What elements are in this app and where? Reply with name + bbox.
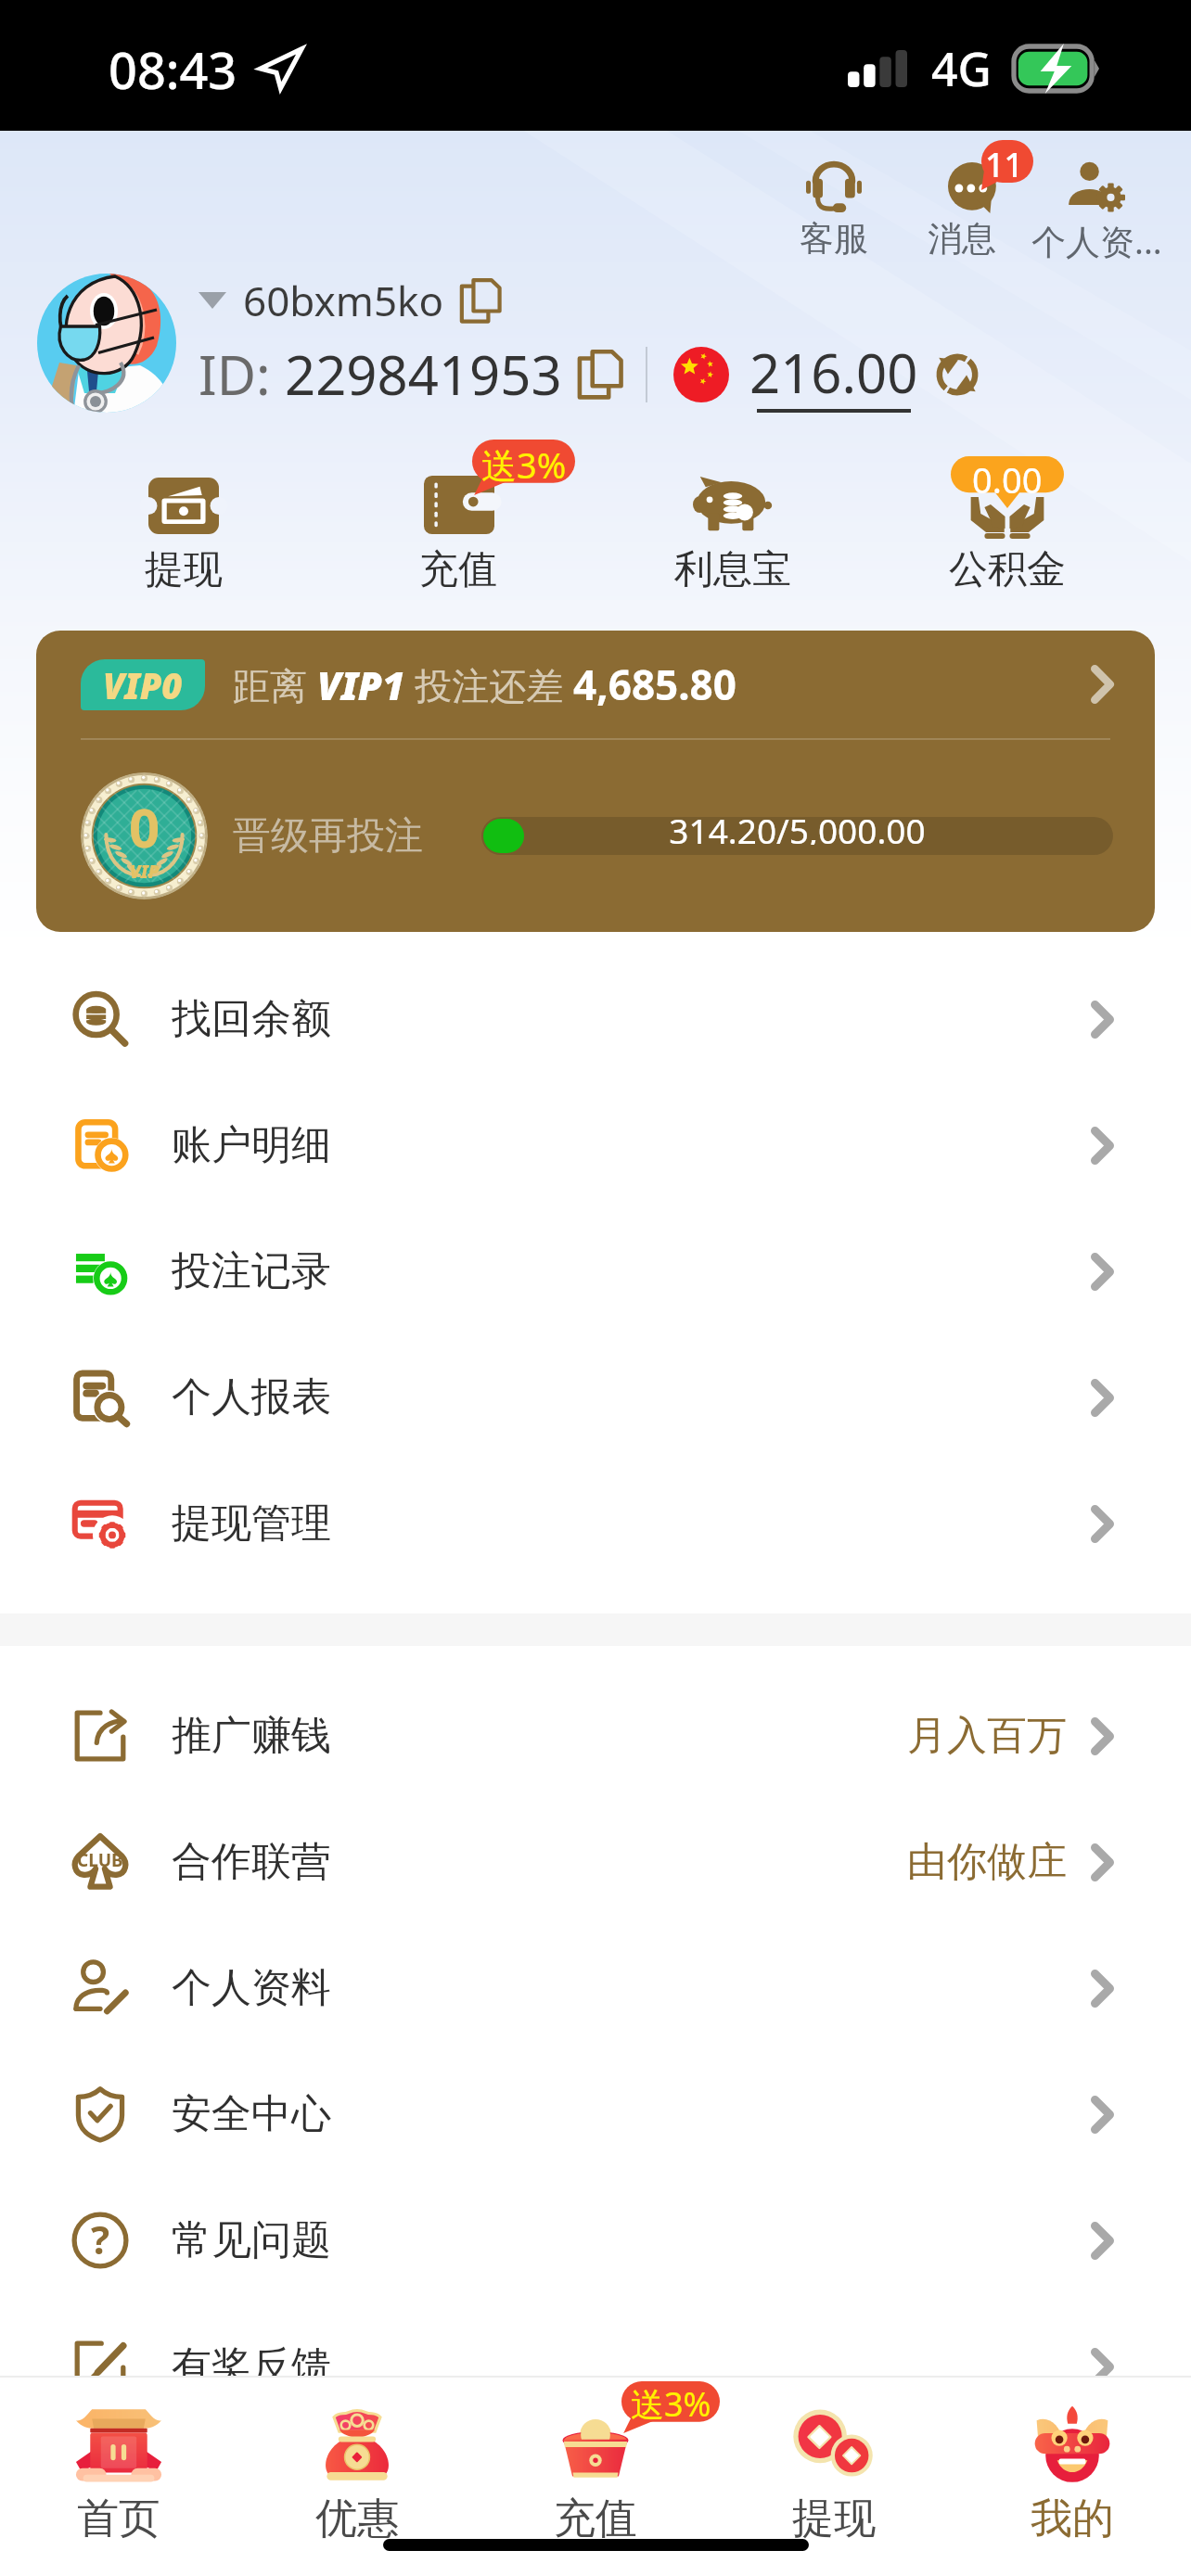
staticText: 月入百万 (907, 1711, 1067, 1761)
staticText: VIP1 (317, 658, 405, 711)
button[interactable]: 我的 (953, 2391, 1191, 2539)
staticText: 公积金 (949, 545, 1066, 594)
staticText: 提现管理 (172, 1498, 331, 1549)
button[interactable]: 安全中心 (0, 2051, 1191, 2177)
staticText: 个人资... (1031, 217, 1162, 264)
button[interactable]: Avatar (37, 274, 176, 413)
staticText: 个人资料 (172, 1963, 331, 2013)
button[interactable]: 推广赚钱 (0, 1673, 1191, 1799)
staticText: 合作联营 (172, 1837, 331, 1887)
button[interactable]: Copy (461, 278, 500, 323)
staticText: 消息 (928, 217, 996, 261)
staticText: 晋级再投注 (233, 812, 423, 861)
staticText: 11 (985, 142, 1024, 187)
button[interactable]: 提现 (46, 440, 321, 594)
button[interactable]: Refresh (935, 352, 980, 397)
staticText: 我的 (1031, 2493, 1114, 2539)
staticText: 提现 (792, 2493, 876, 2539)
button[interactable]: 0.00 (870, 440, 1145, 594)
staticText: 充值 (554, 2493, 637, 2539)
button[interactable]: 首页 (0, 2391, 237, 2539)
staticText: 投注还差 (405, 659, 573, 710)
staticText: 常见问题 (172, 2215, 331, 2265)
button[interactable]: 利息宝 (595, 440, 870, 594)
staticText: 距离 (233, 659, 317, 710)
staticText: 314.20/5,000.00 (481, 817, 1113, 845)
button[interactable]: ? (0, 2177, 1191, 2303)
button[interactable]: 投注记录 (0, 1208, 1191, 1334)
button[interactable]: CLUB (0, 1799, 1191, 1925)
button[interactable]: 个人资... (1026, 156, 1167, 264)
staticText: 216.00 (749, 336, 918, 409)
staticText: 投注记录 (172, 1246, 331, 1296)
staticText: 送3% (631, 2381, 711, 2427)
button[interactable]: 提现管理 (0, 1460, 1191, 1587)
button[interactable]: 客服 (770, 156, 898, 261)
staticText: 找回余额 (172, 994, 331, 1044)
staticText: 由你做庄 (907, 1837, 1067, 1887)
staticText: 有奖反馈 (172, 2341, 331, 2391)
staticText: 优惠 (315, 2493, 399, 2539)
staticText: 推广赚钱 (172, 1711, 331, 1761)
staticText: VIP0 (103, 661, 183, 709)
button[interactable]: 提现 (714, 2391, 953, 2539)
staticText: 0 (129, 790, 160, 863)
button[interactable]: 消息 (898, 156, 1026, 261)
button[interactable]: 个人报表 (0, 1334, 1191, 1460)
button[interactable]: 优惠 (237, 2391, 476, 2539)
button[interactable]: 找回余额 (0, 956, 1191, 1082)
button[interactable]: 有奖反馈 (0, 2303, 1191, 2429)
staticText: 4G (931, 37, 992, 100)
button[interactable]: 个人资料 (0, 1925, 1191, 2051)
staticText: 60bxm5ko (243, 273, 444, 328)
staticText: CLUB (77, 1848, 123, 1872)
staticText: 0.00 (972, 455, 1043, 504)
staticText: ID: (198, 338, 285, 411)
button[interactable]: 送3% (321, 440, 595, 594)
staticText: 首页 (77, 2493, 160, 2539)
staticText: 229841953 (285, 338, 562, 411)
staticText: 客服 (800, 217, 868, 261)
other: Location (260, 48, 301, 89)
staticText: ? (91, 2213, 110, 2265)
staticText: 安全中心 (172, 2089, 331, 2139)
button[interactable]: 送3% (476, 2391, 714, 2539)
staticText: 个人报表 (172, 1372, 331, 1422)
button[interactable]: Copy (579, 350, 621, 399)
staticText: VIP (130, 860, 160, 884)
button[interactable]: VIP0 (36, 631, 1155, 932)
staticText: 利息宝 (674, 545, 791, 594)
staticText: 提现 (145, 545, 223, 594)
button[interactable]: 账户明细 (0, 1082, 1191, 1208)
staticText: 充值 (419, 545, 497, 594)
staticText: 账户明细 (172, 1120, 331, 1170)
staticText: 送3% (481, 440, 567, 489)
staticText: 08:43 (109, 35, 237, 104)
staticText: 4,685.80 (573, 657, 736, 712)
